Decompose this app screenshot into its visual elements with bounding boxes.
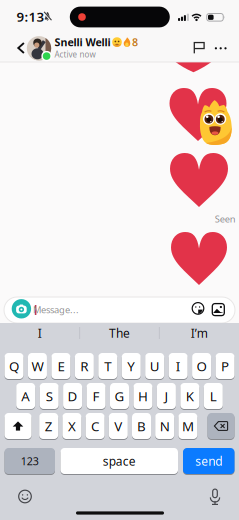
staticText: P <box>221 357 229 375</box>
button[interactable]: P <box>215 352 234 379</box>
button[interactable]: Snelli Welli <box>54 35 144 56</box>
button[interactable]: E <box>51 352 70 379</box>
button[interactable]: I <box>1 323 79 343</box>
staticText: U <box>150 357 160 375</box>
staticText: W <box>31 357 43 375</box>
staticText: G <box>114 387 124 405</box>
button[interactable]: X <box>62 412 81 439</box>
button[interactable]: K <box>180 382 199 409</box>
button[interactable]: L <box>204 382 223 409</box>
staticText: T <box>104 357 111 375</box>
button[interactable]: B <box>132 412 151 439</box>
button[interactable]: Z <box>39 412 58 439</box>
staticText: 8 <box>132 35 138 49</box>
staticText: N <box>160 417 170 435</box>
staticText: B <box>137 417 146 435</box>
staticText: J <box>164 387 168 405</box>
button[interactable]: I’m <box>160 323 238 343</box>
button[interactable]: M <box>178 412 197 439</box>
button[interactable]: J <box>157 382 176 409</box>
button[interactable]: Sticker <box>191 302 204 315</box>
staticText: C <box>91 417 99 435</box>
button[interactable]: Profile <box>26 36 51 61</box>
button[interactable]: 123 <box>4 447 55 474</box>
staticText: V <box>114 417 122 435</box>
button[interactable]: Camera <box>12 299 31 318</box>
staticText: space <box>103 453 136 469</box>
staticText: send <box>195 453 222 469</box>
button[interactable]: space <box>60 447 178 474</box>
button[interactable]: T <box>98 352 117 379</box>
button[interactable]: The <box>80 323 158 343</box>
staticText: Y <box>127 357 135 375</box>
button[interactable]: Back <box>17 42 26 54</box>
button[interactable]: N <box>155 412 174 439</box>
staticText: Message... <box>33 303 79 316</box>
button[interactable]: More options <box>214 42 228 54</box>
button[interactable]: Q <box>4 352 23 379</box>
staticText: X <box>68 417 76 435</box>
button[interactable]: O <box>192 352 211 379</box>
staticText: Active now <box>54 49 95 60</box>
staticText: 9:13 <box>16 8 44 25</box>
button[interactable]: F <box>86 382 105 409</box>
staticText: H <box>138 387 148 405</box>
button[interactable]: Flag <box>193 42 205 54</box>
staticText: E <box>57 357 64 375</box>
button[interactable]: I <box>169 352 188 379</box>
button[interactable]: Delete <box>207 412 234 439</box>
button[interactable]: Emoji <box>17 489 32 504</box>
button[interactable]: Dictation <box>209 488 221 505</box>
staticText: Snelli Welli <box>54 35 110 49</box>
staticText: Q <box>9 357 19 375</box>
staticText: Seen <box>215 213 236 225</box>
staticText: S <box>46 387 53 405</box>
button[interactable]: W <box>28 352 47 379</box>
staticText: I’m <box>191 325 208 341</box>
staticText: A <box>21 387 30 405</box>
button[interactable]: D <box>63 382 82 409</box>
staticText: K <box>186 387 194 405</box>
staticText: M <box>182 417 194 435</box>
staticText: I <box>176 357 181 375</box>
button[interactable]: send <box>183 447 234 474</box>
staticText: L <box>210 387 217 405</box>
button[interactable]: S <box>40 382 59 409</box>
staticText: I <box>38 325 42 341</box>
button[interactable]: R <box>75 352 94 379</box>
button[interactable]: C <box>86 412 105 439</box>
staticText: D <box>68 387 78 405</box>
button[interactable]: U <box>145 352 164 379</box>
staticText: R <box>80 357 88 375</box>
staticText: F <box>92 387 99 405</box>
button[interactable]: Photo <box>212 303 225 316</box>
button[interactable]: Y <box>122 352 141 379</box>
staticText: 123 <box>21 454 39 468</box>
button[interactable]: H <box>133 382 152 409</box>
button[interactable]: G <box>110 382 129 409</box>
staticText: The <box>109 325 130 341</box>
button[interactable]: V <box>109 412 128 439</box>
button[interactable]: A <box>16 382 35 409</box>
button[interactable]: Shift <box>4 412 31 439</box>
staticText: Z <box>45 417 53 435</box>
staticText: O <box>197 357 207 375</box>
